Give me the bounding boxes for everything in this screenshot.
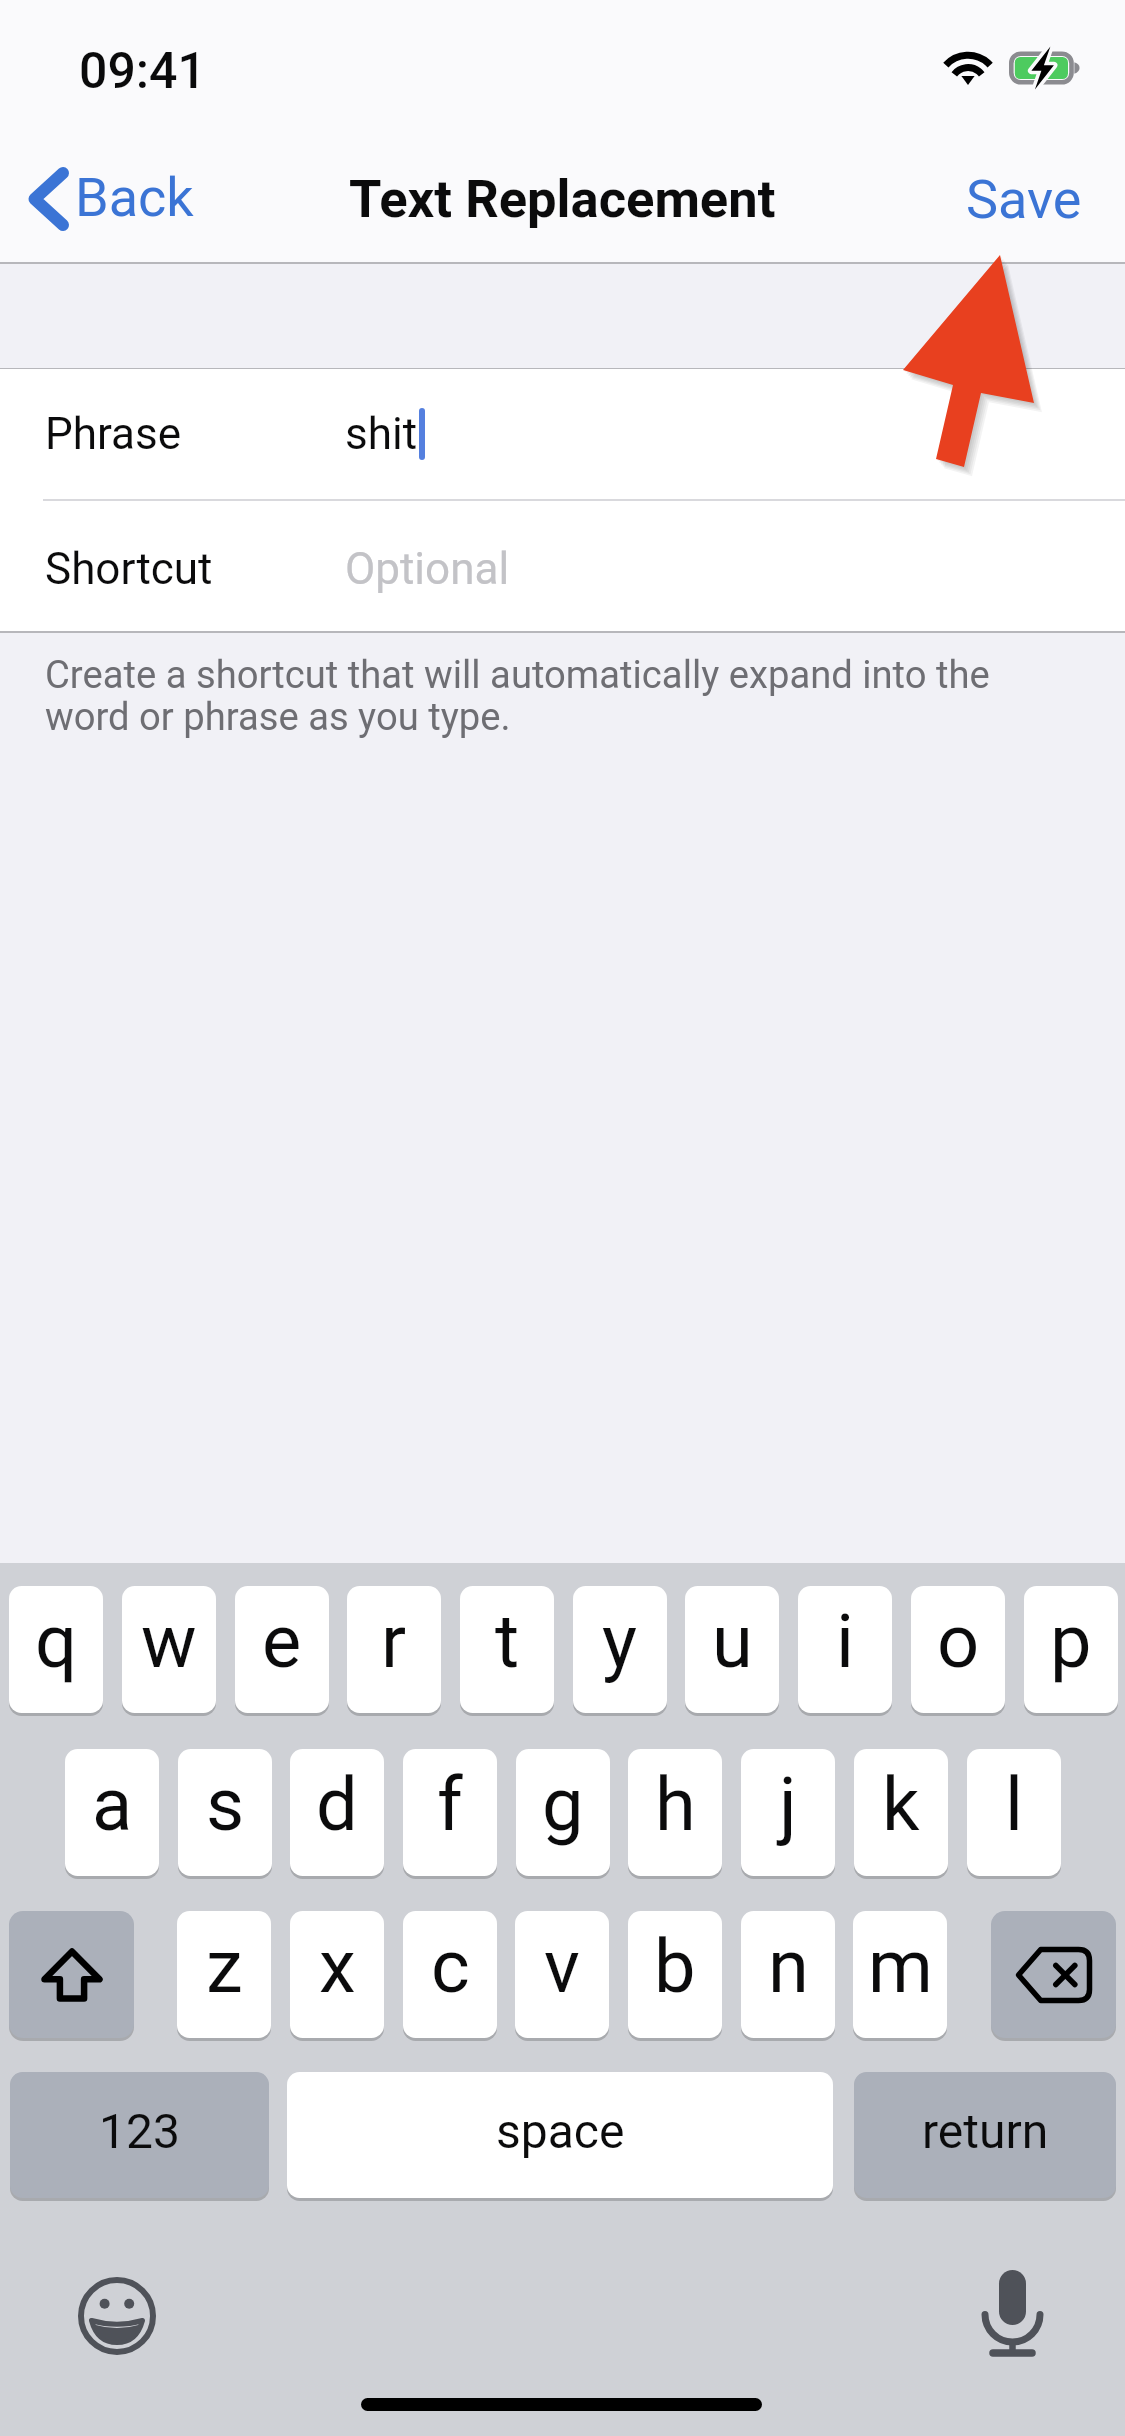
staticText: Phrase xyxy=(45,408,182,460)
button[interactable]: l xyxy=(967,1749,1061,1876)
button[interactable]: p xyxy=(1024,1586,1118,1713)
staticText: u xyxy=(712,1598,753,1685)
button[interactable]: h xyxy=(628,1749,722,1876)
button[interactable]: Backspace xyxy=(991,1911,1116,2038)
button[interactable]: x xyxy=(290,1911,384,2038)
staticText: n xyxy=(768,1923,809,2010)
staticText: j xyxy=(779,1761,797,1848)
staticText: space xyxy=(496,2103,625,2159)
staticText: h xyxy=(655,1761,696,1848)
button[interactable]: Shortcut xyxy=(0,501,1125,631)
staticText: t xyxy=(495,1598,520,1685)
button[interactable]: a xyxy=(65,1749,159,1876)
staticText: Text Replacement xyxy=(349,168,776,230)
staticText: a xyxy=(92,1761,133,1848)
button[interactable]: Back xyxy=(0,146,220,252)
button[interactable]: w xyxy=(122,1586,216,1713)
button[interactable]: e xyxy=(235,1586,329,1713)
staticText: 123 xyxy=(99,2103,180,2159)
staticText: Create a shortcut that will automaticall… xyxy=(45,653,1010,739)
button[interactable]: c xyxy=(403,1911,497,2038)
button[interactable]: t xyxy=(460,1586,554,1713)
button[interactable]: Phrase xyxy=(0,370,1125,499)
button[interactable]: Save xyxy=(938,148,1110,251)
button[interactable]: q xyxy=(9,1586,103,1713)
button[interactable]: d xyxy=(290,1749,384,1876)
staticText: m xyxy=(868,1923,933,2010)
button[interactable]: Shift xyxy=(9,1911,134,2038)
staticText: Back xyxy=(75,166,194,229)
button[interactable]: k xyxy=(854,1749,948,1876)
button[interactable]: r xyxy=(347,1586,441,1713)
staticText: q xyxy=(35,1598,78,1685)
staticText: e xyxy=(262,1598,302,1685)
staticText: Shortcut xyxy=(45,543,213,595)
staticText: r xyxy=(381,1598,407,1685)
button[interactable]: space xyxy=(287,2072,833,2198)
staticText: s xyxy=(206,1761,245,1848)
button[interactable]: return xyxy=(854,2072,1116,2198)
staticText: return xyxy=(922,2103,1049,2159)
staticText: z xyxy=(206,1923,243,2010)
button[interactable]: o xyxy=(911,1586,1005,1713)
staticText: k xyxy=(882,1761,920,1848)
staticText: Save xyxy=(966,168,1082,231)
staticText: o xyxy=(937,1598,980,1685)
button[interactable]: m xyxy=(853,1911,947,2038)
button[interactable]: n xyxy=(741,1911,835,2038)
button[interactable]: y xyxy=(573,1586,667,1713)
button[interactable]: z xyxy=(177,1911,271,2038)
staticText: w xyxy=(141,1598,197,1685)
button[interactable]: j xyxy=(741,1749,835,1876)
button[interactable]: Emoji keyboard xyxy=(66,2265,168,2367)
button[interactable]: i xyxy=(798,1586,892,1713)
button[interactable]: u xyxy=(685,1586,779,1713)
staticText: x xyxy=(319,1923,356,2010)
staticText: d xyxy=(316,1761,358,1848)
staticText: c xyxy=(431,1923,470,2010)
button[interactable]: s xyxy=(178,1749,272,1876)
button[interactable]: 123 xyxy=(10,2072,269,2198)
staticText: f xyxy=(437,1761,463,1848)
button[interactable]: b xyxy=(628,1911,722,2038)
staticText: l xyxy=(1005,1761,1023,1848)
staticText: y xyxy=(602,1598,638,1685)
button[interactable]: Dictation xyxy=(984,2270,1040,2362)
button[interactable]: f xyxy=(403,1749,497,1876)
staticText: Optional xyxy=(345,543,510,595)
staticText: p xyxy=(1050,1598,1092,1685)
staticText: v xyxy=(544,1923,580,2010)
staticText: g xyxy=(542,1761,584,1848)
button[interactable]: g xyxy=(516,1749,610,1876)
staticText: 09:41 xyxy=(79,42,206,101)
staticText: i xyxy=(836,1598,854,1685)
button[interactable]: v xyxy=(515,1911,609,2038)
staticText: shit xyxy=(345,408,418,460)
staticText: b xyxy=(654,1923,696,2010)
